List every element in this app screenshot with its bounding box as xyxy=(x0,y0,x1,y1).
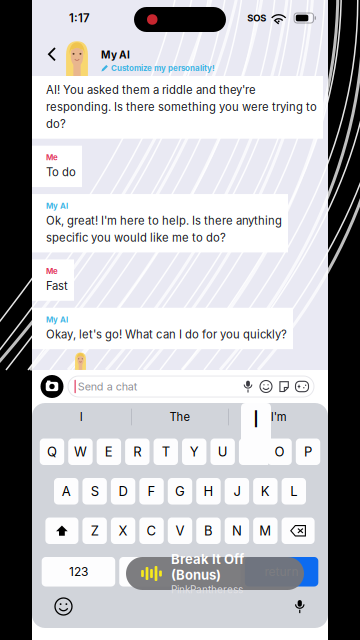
staticText: I'm xyxy=(271,410,287,424)
button[interactable]: T xyxy=(154,438,178,465)
button[interactable]: I xyxy=(239,438,263,465)
staticText: 1:17 xyxy=(69,11,90,25)
button[interactable]: H xyxy=(196,478,221,504)
button[interactable]: K xyxy=(253,478,277,504)
staticText: J xyxy=(233,483,240,499)
button[interactable]: U xyxy=(210,438,235,465)
staticText: U xyxy=(218,444,228,460)
staticText: I xyxy=(80,410,83,424)
staticText: AI! You asked them a riddle and they're xyxy=(46,83,256,97)
button[interactable]: Dictation xyxy=(294,599,305,614)
button[interactable]: O xyxy=(267,438,292,465)
button[interactable]: G xyxy=(168,478,192,504)
staticText: Okay, let's go! What can I do for you qu… xyxy=(46,327,287,341)
staticText: V xyxy=(175,523,184,539)
staticText: H xyxy=(203,483,213,499)
button[interactable]: E xyxy=(97,438,121,465)
staticText: G xyxy=(175,483,185,499)
button[interactable]: I xyxy=(32,403,131,431)
staticText: O xyxy=(275,444,285,460)
button[interactable]: Back xyxy=(40,36,64,76)
staticText: B xyxy=(204,523,213,539)
button[interactable]: 123 xyxy=(42,557,115,586)
staticText: K xyxy=(261,483,270,499)
staticText: My AI xyxy=(46,315,68,324)
button[interactable]: J xyxy=(225,478,249,504)
button[interactable]: A xyxy=(54,478,78,504)
button[interactable]: Emoji xyxy=(257,378,275,394)
staticText: responding. Is there something you were … xyxy=(46,100,317,114)
button[interactable]: Emoji keyboard xyxy=(55,598,72,615)
staticText: C xyxy=(147,523,157,539)
staticText: T xyxy=(162,444,170,460)
button[interactable]: Games xyxy=(293,378,311,394)
staticText: P xyxy=(304,444,312,460)
staticText: PinkPantheress xyxy=(171,583,243,596)
staticText: return xyxy=(264,564,298,579)
staticText: L xyxy=(290,483,297,499)
staticText: I xyxy=(253,405,259,433)
button[interactable]: My AI xyxy=(64,38,215,76)
staticText: S xyxy=(91,483,99,499)
staticText: N xyxy=(232,523,242,539)
staticText: Fast xyxy=(46,279,68,293)
button[interactable]: D xyxy=(111,478,135,504)
button[interactable]: I'm xyxy=(229,403,328,431)
button[interactable]: N xyxy=(225,517,249,544)
staticText: Q xyxy=(47,444,57,460)
staticText: Y xyxy=(190,444,199,460)
staticText: A xyxy=(62,483,71,499)
button[interactable]: F xyxy=(139,478,164,504)
button[interactable]: P xyxy=(296,438,320,465)
button[interactable]: Voice note xyxy=(239,378,257,394)
staticText: Customize my personality! xyxy=(111,63,215,73)
button[interactable]: Camera xyxy=(36,370,68,403)
staticText: To do xyxy=(46,165,76,179)
staticText: Me xyxy=(46,266,58,276)
staticText: D xyxy=(119,483,128,499)
staticText: My AI xyxy=(101,49,130,61)
button[interactable]: X xyxy=(111,517,135,544)
button[interactable] xyxy=(119,557,241,586)
button[interactable]: Delete xyxy=(282,517,315,544)
staticText: Break It Off (Bonus) xyxy=(171,551,244,583)
button[interactable]: Q xyxy=(40,438,64,465)
staticText: The xyxy=(169,410,190,424)
button[interactable]: W xyxy=(68,438,93,465)
button[interactable]: C xyxy=(139,517,164,544)
button[interactable]: B xyxy=(196,517,221,544)
staticText: Z xyxy=(91,523,99,539)
staticText: E xyxy=(105,444,113,460)
staticText: SOS xyxy=(247,12,266,24)
button[interactable]: S xyxy=(82,478,107,504)
staticText: Send a chat xyxy=(78,380,138,393)
staticText: R xyxy=(133,444,141,460)
button[interactable]: Z xyxy=(82,517,107,544)
button[interactable]: V xyxy=(168,517,192,544)
button[interactable]: M xyxy=(253,517,277,544)
staticText: specific you would like me to do? xyxy=(46,231,226,244)
button[interactable]: Y xyxy=(182,438,206,465)
staticText: Me xyxy=(46,153,58,162)
button[interactable]: R xyxy=(125,438,149,465)
staticText: 123 xyxy=(69,564,88,579)
button[interactable]: return xyxy=(245,557,318,586)
button[interactable]: L xyxy=(282,478,306,504)
staticText: M xyxy=(259,523,271,539)
staticText: do? xyxy=(46,117,66,131)
staticText: W xyxy=(74,444,87,460)
button[interactable]: The xyxy=(131,403,229,431)
staticText: My AI xyxy=(46,201,68,210)
staticText: Ok, great! I'm here to help. Is there an… xyxy=(46,214,282,227)
button[interactable]: Shift xyxy=(45,517,78,544)
staticText: X xyxy=(119,523,128,539)
button[interactable]: Stickers xyxy=(275,378,293,394)
staticText: F xyxy=(147,483,155,499)
